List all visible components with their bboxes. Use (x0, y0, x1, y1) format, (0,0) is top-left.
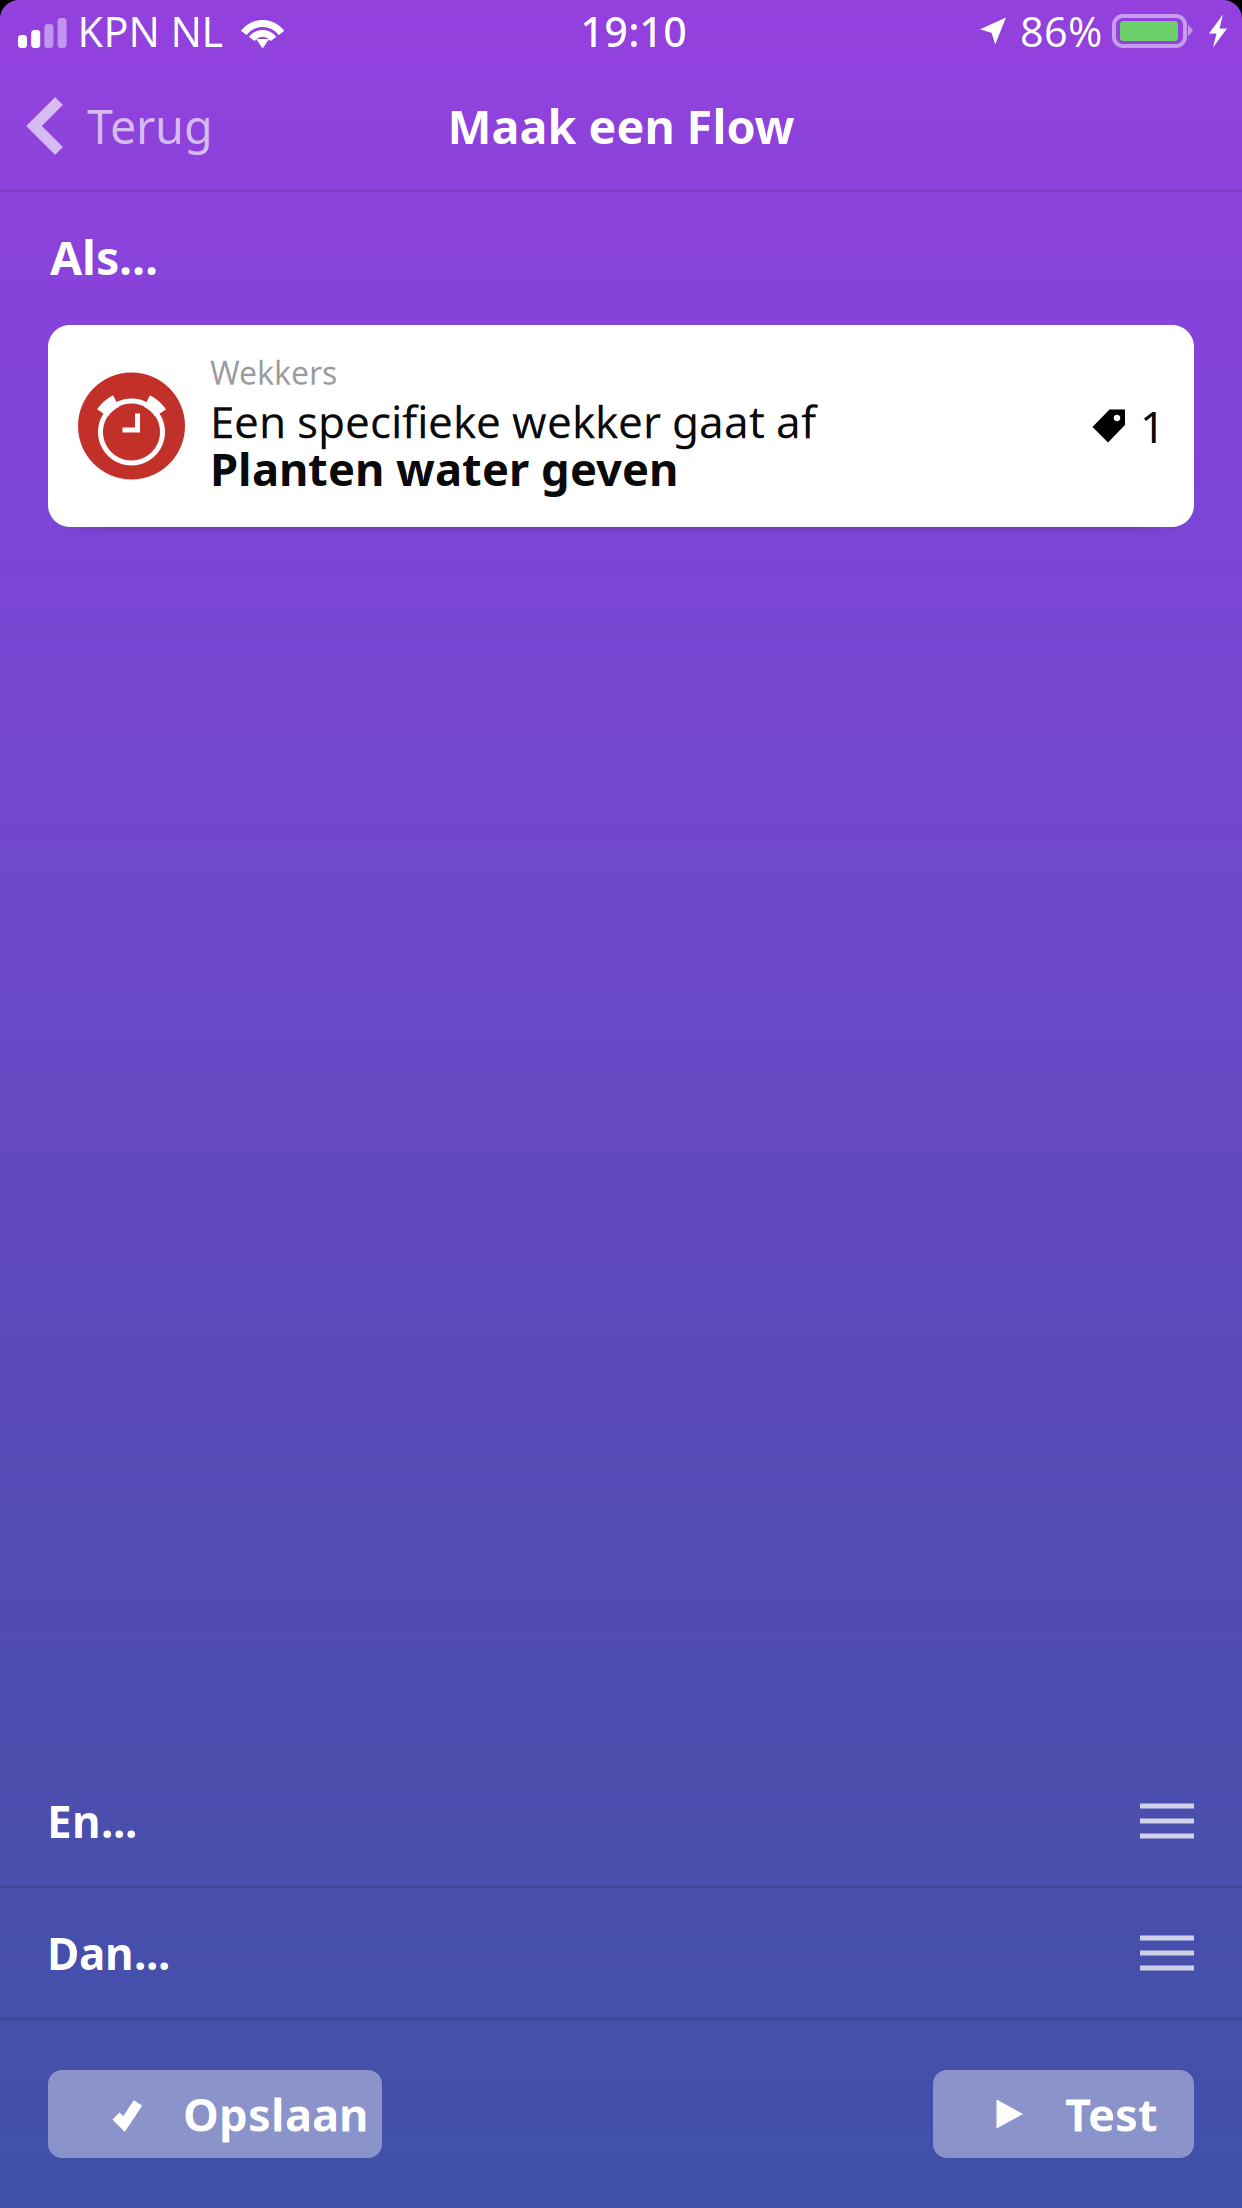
button[interactable]: Test (933, 2070, 1194, 2158)
button[interactable]: Wekkers (48, 325, 1194, 527)
staticText: En... (47, 1792, 137, 1850)
button[interactable]: Opslaan (48, 2070, 382, 2158)
staticText: Dan... (47, 1924, 170, 1982)
staticText: Een specifieke wekker gaat af (210, 392, 816, 450)
staticText: Als... (50, 226, 158, 288)
staticText: Maak een Flow (447, 95, 794, 157)
staticText: 86% (1020, 4, 1102, 58)
staticText: Planten water geven (210, 438, 678, 498)
button[interactable]: En... (0, 1756, 1242, 1886)
staticText: KPN NL (78, 4, 224, 58)
button[interactable]: Reorder Then actions (1116, 1899, 1218, 2006)
staticText: 1 (1140, 397, 1165, 455)
button[interactable]: Dan... (0, 1888, 1242, 2018)
button[interactable]: Reorder And conditions (1116, 1767, 1218, 1874)
staticText: Test (1065, 2084, 1158, 2144)
staticText: Opslaan (183, 2084, 368, 2144)
button[interactable]: Terug (0, 62, 237, 190)
staticText: Terug (87, 95, 213, 157)
staticText: 19:10 (580, 4, 687, 58)
staticText: Wekkers (210, 351, 337, 393)
